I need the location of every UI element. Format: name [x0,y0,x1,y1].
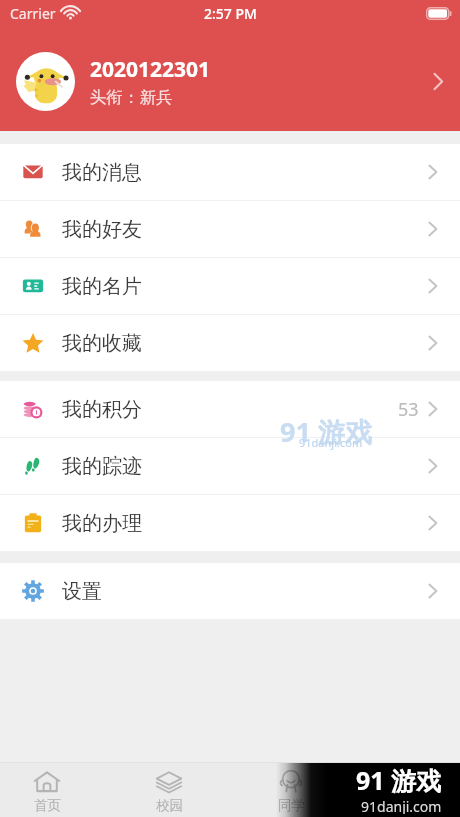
staticText: 我的办理 [62,511,142,536]
staticText: 我的名片 [62,274,142,299]
button[interactable]: 我的好友 [0,201,460,257]
button[interactable]: 我的办理 [0,495,460,551]
button[interactable]: 我的积分 [0,381,460,437]
staticText: 设置 [62,579,102,604]
staticText: 53 [398,397,419,422]
staticText: Carrier [10,4,56,23]
staticText: 同学 [278,797,305,814]
staticText: 91danji.com [299,435,363,450]
staticText: 91danji.com [361,797,442,814]
staticText: 91 游戏 [280,413,372,450]
staticText: 2020122301 [90,55,211,84]
button[interactable]: 我的 [352,763,446,817]
button[interactable]: 设置 [0,563,460,619]
staticText: 首页 [34,797,61,814]
button[interactable]: 我的消息 [0,144,460,200]
other: Profile details [432,72,445,91]
button[interactable]: 同学 [230,763,352,817]
staticText: 我的消息 [62,160,142,185]
staticText: 我的 [386,797,413,814]
staticText: 91 游戏 [356,763,442,797]
staticText: 校园 [156,797,183,814]
staticText: 我的积分 [62,397,142,422]
button[interactable]: 校园 [108,763,230,817]
staticText: 头衔：新兵 [90,87,173,108]
button[interactable]: 我的踪迹 [0,438,460,494]
button[interactable]: 我的名片 [0,258,460,314]
staticText: 我的踪迹 [62,454,142,479]
staticText: 我的收藏 [62,331,142,356]
staticText: 2:57 PM [204,4,257,23]
button[interactable]: 2020122301 [0,26,460,131]
button[interactable]: 我的收藏 [0,315,460,371]
button[interactable]: 首页 [0,763,108,817]
staticText: 我的好友 [62,217,142,242]
